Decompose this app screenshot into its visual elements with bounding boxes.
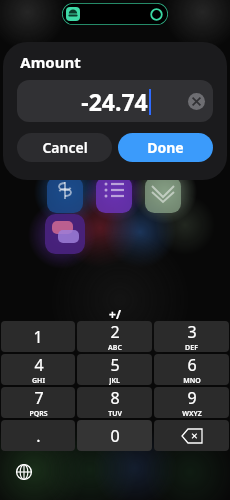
- button[interactable]: .: [1, 420, 75, 451]
- staticText: -24.74: [81, 86, 148, 117]
- staticText: 3: [187, 321, 197, 343]
- staticText: 4: [34, 354, 44, 376]
- button[interactable]: Done: [118, 133, 213, 162]
- button[interactable]: Switch keyboard: [16, 464, 32, 480]
- button[interactable]: Clear text: [188, 93, 205, 110]
- button[interactable]: 3: [154, 321, 229, 352]
- staticText: 1: [33, 326, 43, 348]
- staticText: PQRS: [29, 409, 48, 418]
- staticText: MNO: [183, 376, 201, 385]
- button[interactable]: 6: [154, 354, 229, 385]
- button[interactable]: 9: [154, 387, 229, 418]
- button[interactable]: 2: [77, 321, 152, 352]
- button[interactable]: Cancel: [17, 133, 112, 162]
- staticText: 7: [34, 387, 44, 409]
- staticText: 9: [187, 387, 197, 409]
- staticText: Done: [147, 138, 184, 157]
- staticText: ABC: [108, 343, 122, 352]
- staticText: TUV: [108, 409, 122, 418]
- staticText: 6: [187, 354, 197, 376]
- staticText: 5: [110, 354, 120, 376]
- staticText: WXYZ: [182, 409, 202, 418]
- button[interactable]: -24.74: [17, 80, 213, 122]
- staticText: 8: [110, 387, 120, 409]
- staticText: JKL: [109, 376, 120, 385]
- staticText: +/: [109, 306, 121, 320]
- button[interactable]: 5: [77, 354, 152, 385]
- button[interactable]: 8: [77, 387, 152, 418]
- button[interactable]: 1: [1, 321, 75, 352]
- button[interactable]: +/: [101, 306, 129, 320]
- staticText: 0: [110, 425, 120, 447]
- button[interactable]: 4: [1, 354, 75, 385]
- staticText: Amount: [20, 52, 81, 72]
- staticText: DEF: [185, 343, 198, 352]
- button[interactable]: 0: [77, 420, 152, 451]
- staticText: .: [36, 425, 41, 447]
- staticText: GHI: [32, 376, 45, 385]
- button[interactable]: Delete: [154, 420, 229, 451]
- staticText: 2: [110, 321, 120, 343]
- staticText: Cancel: [42, 138, 88, 157]
- button[interactable]: 7: [1, 387, 75, 418]
